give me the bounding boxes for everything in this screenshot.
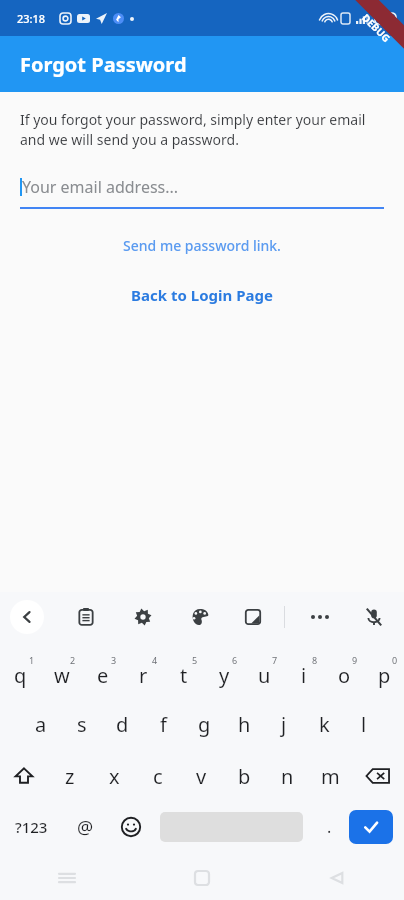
button[interactable]: Settings — [123, 597, 163, 637]
staticText: 8 — [312, 654, 318, 666]
staticText: Back to Login Page — [131, 285, 273, 305]
button[interactable]: y — [204, 646, 244, 698]
button[interactable]: . — [309, 802, 349, 852]
button[interactable]: a — [20, 698, 61, 750]
staticText: h — [238, 711, 251, 738]
button[interactable]: Microphone off — [354, 597, 394, 637]
button[interactable]: Backspace — [352, 750, 404, 802]
button[interactable]: Send me password link. — [20, 231, 384, 259]
staticText: 4 — [152, 654, 158, 666]
staticText: w — [54, 662, 70, 689]
staticText: d — [116, 711, 129, 738]
button[interactable]: More options — [300, 597, 340, 637]
button[interactable]: m — [309, 750, 352, 802]
staticText: u — [258, 662, 271, 689]
button[interactable]: Back — [10, 600, 44, 634]
button[interactable]: @ — [62, 802, 108, 852]
staticText: i — [301, 662, 307, 689]
button[interactable]: v — [180, 750, 223, 802]
button[interactable]: x — [92, 750, 136, 802]
button[interactable]: Your email address... — [20, 167, 384, 207]
button[interactable]: b — [223, 750, 266, 802]
staticText: ?123 — [15, 817, 48, 837]
staticText: b — [238, 763, 251, 790]
button[interactable]: Back to Login Page — [20, 281, 384, 309]
button[interactable]: ?123 — [0, 802, 62, 852]
button[interactable]: Shift — [0, 750, 48, 802]
staticText: o — [338, 662, 351, 689]
button[interactable]: h — [224, 698, 264, 750]
button[interactable]: p — [364, 646, 404, 698]
staticText: a — [35, 711, 47, 738]
button[interactable]: q — [0, 646, 41, 698]
button[interactable]: Emoji — [108, 802, 154, 852]
staticText: q — [14, 662, 27, 689]
staticText: z — [65, 763, 75, 790]
staticText: f — [160, 711, 167, 738]
button[interactable]: d — [102, 698, 143, 750]
button[interactable]: Recents — [0, 856, 134, 900]
button[interactable]: Theme — [180, 597, 220, 637]
button[interactable]: c — [136, 750, 180, 802]
staticText: c — [153, 763, 163, 790]
staticText: r — [139, 662, 148, 689]
staticText: 23:18 — [17, 11, 46, 26]
staticText: Forgot Password — [20, 51, 187, 78]
staticText: p — [378, 662, 391, 689]
staticText: 6 — [232, 654, 238, 666]
button[interactable]: Clipboard — [66, 597, 106, 637]
staticText: j — [281, 711, 287, 738]
button[interactable]: o — [324, 646, 364, 698]
button[interactable]: k — [304, 698, 344, 750]
button[interactable]: t — [164, 646, 204, 698]
staticText: 7 — [272, 654, 278, 666]
staticText: Your email address... — [22, 176, 179, 198]
button[interactable]: Enter — [349, 810, 393, 844]
staticText: v — [196, 763, 207, 790]
staticText: 9 — [352, 654, 358, 666]
button[interactable]: s — [61, 698, 102, 750]
staticText: e — [97, 662, 109, 689]
staticText: 2 — [70, 654, 76, 666]
staticText: k — [319, 711, 330, 738]
button[interactable]: j — [264, 698, 304, 750]
button[interactable]: z — [48, 750, 92, 802]
staticText: y — [219, 662, 230, 689]
button[interactable]: w — [41, 646, 82, 698]
staticText: 3 — [111, 654, 117, 666]
staticText: s — [77, 711, 87, 738]
button[interactable]: f — [143, 698, 184, 750]
staticText: t — [180, 662, 188, 689]
button[interactable]: Resize keyboard — [233, 597, 273, 637]
staticText: 0 — [392, 654, 398, 666]
staticText: 5 — [192, 654, 198, 666]
button[interactable]: Home — [134, 856, 269, 900]
button[interactable]: n — [266, 750, 309, 802]
button[interactable]: l — [344, 698, 384, 750]
staticText: If you forgot your password, simply ente… — [20, 110, 384, 149]
button[interactable]: i — [284, 646, 324, 698]
staticText: 1 — [29, 654, 35, 666]
button[interactable]: e — [82, 646, 123, 698]
button[interactable]: r — [123, 646, 164, 698]
staticText: l — [361, 711, 367, 738]
staticText: m — [321, 763, 340, 790]
staticText: DEBUG — [359, 11, 394, 45]
staticText: Send me password link. — [123, 236, 281, 255]
staticText: g — [198, 711, 211, 738]
staticText: x — [109, 763, 120, 790]
button[interactable]: g — [184, 698, 224, 750]
staticText: n — [281, 763, 294, 790]
staticText: @ — [77, 815, 94, 840]
staticText: . — [327, 816, 332, 838]
button[interactable]: u — [244, 646, 284, 698]
